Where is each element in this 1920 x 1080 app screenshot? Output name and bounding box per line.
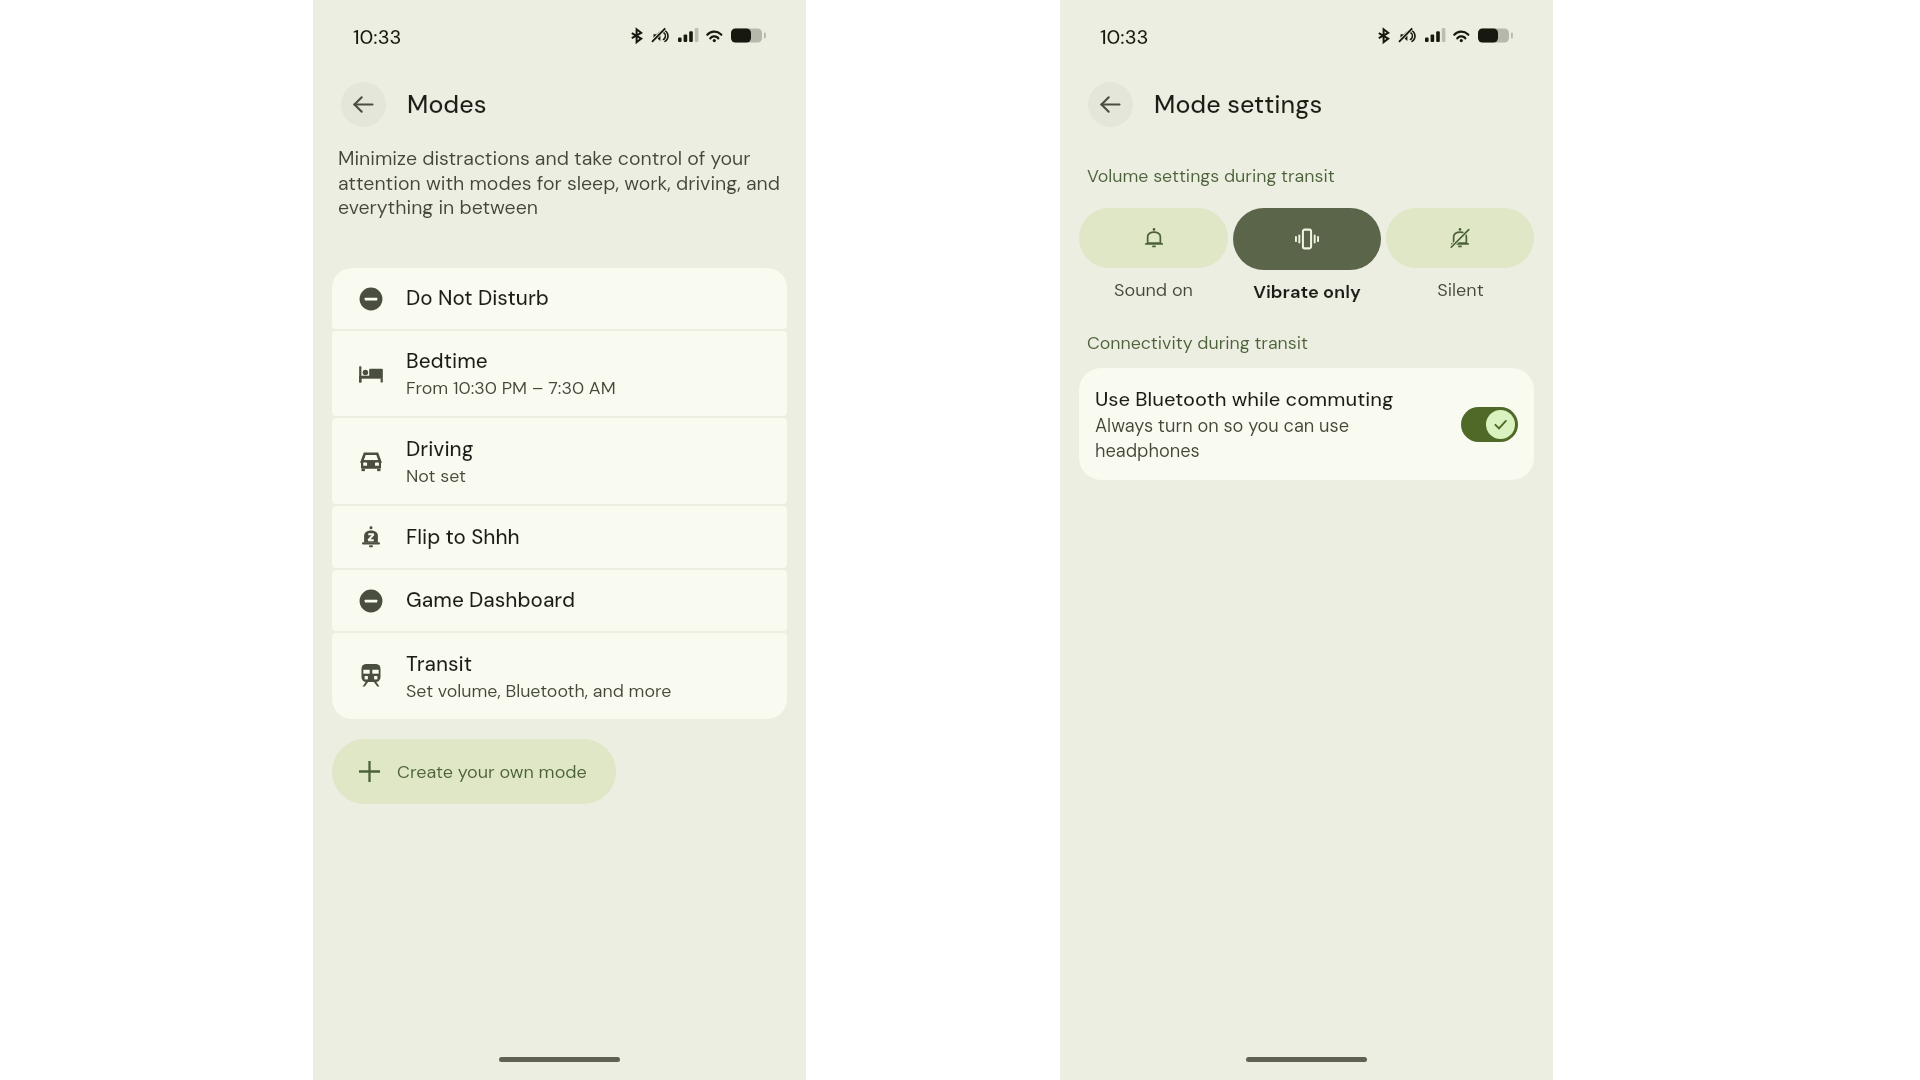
button[interactable]: Flip to Shhh xyxy=(332,506,787,568)
button[interactable]: Create your own mode xyxy=(332,739,616,804)
button[interactable]: Game Dashboard xyxy=(332,570,787,631)
staticText: Game Dashboard xyxy=(406,587,576,614)
staticText: Set volume, Bluetooth, and more xyxy=(406,679,672,702)
staticText: Always turn on so you can use headphones xyxy=(1095,414,1349,462)
staticText: Use Bluetooth while commuting xyxy=(1095,386,1394,412)
staticText: Not set xyxy=(406,464,466,487)
staticText: Silent xyxy=(1437,278,1484,301)
staticText: Bedtime xyxy=(406,348,488,375)
staticText: Flip to Shhh xyxy=(406,524,520,551)
button[interactable]: Use Bluetooth while commuting xyxy=(1079,368,1534,480)
staticText: Mode settings xyxy=(1154,88,1323,121)
button[interactable]: Transit xyxy=(332,633,787,719)
staticText: Driving xyxy=(406,436,474,463)
button[interactable]: Back xyxy=(1088,82,1133,127)
staticText: Vibrate only xyxy=(1253,280,1361,303)
button[interactable]: Silent xyxy=(1386,208,1534,268)
button[interactable]: Bedtime xyxy=(332,331,787,416)
button[interactable]: Driving xyxy=(332,418,787,504)
staticText: Transit xyxy=(406,651,473,678)
button[interactable]: Back xyxy=(341,82,386,127)
staticText: 10:33 xyxy=(353,24,402,50)
staticText: 10:33 xyxy=(1100,24,1149,50)
staticText: Volume settings during transit xyxy=(1087,164,1335,187)
button[interactable]: Sound on xyxy=(1079,208,1228,268)
button[interactable]: Do Not Disturb xyxy=(332,268,787,329)
staticText: Minimize distractions and take control o… xyxy=(338,146,800,220)
staticText: Do Not Disturb xyxy=(406,285,549,312)
staticText: Create your own mode xyxy=(397,760,587,783)
button[interactable]: Use Bluetooth while commuting toggle xyxy=(1461,407,1518,442)
staticText: Modes xyxy=(407,88,487,121)
button[interactable]: Vibrate only xyxy=(1233,208,1381,270)
staticText: From 10:30 PM – 7:30 AM xyxy=(406,376,616,399)
staticText: Connectivity during transit xyxy=(1087,331,1309,354)
staticText: Sound on xyxy=(1114,278,1193,301)
